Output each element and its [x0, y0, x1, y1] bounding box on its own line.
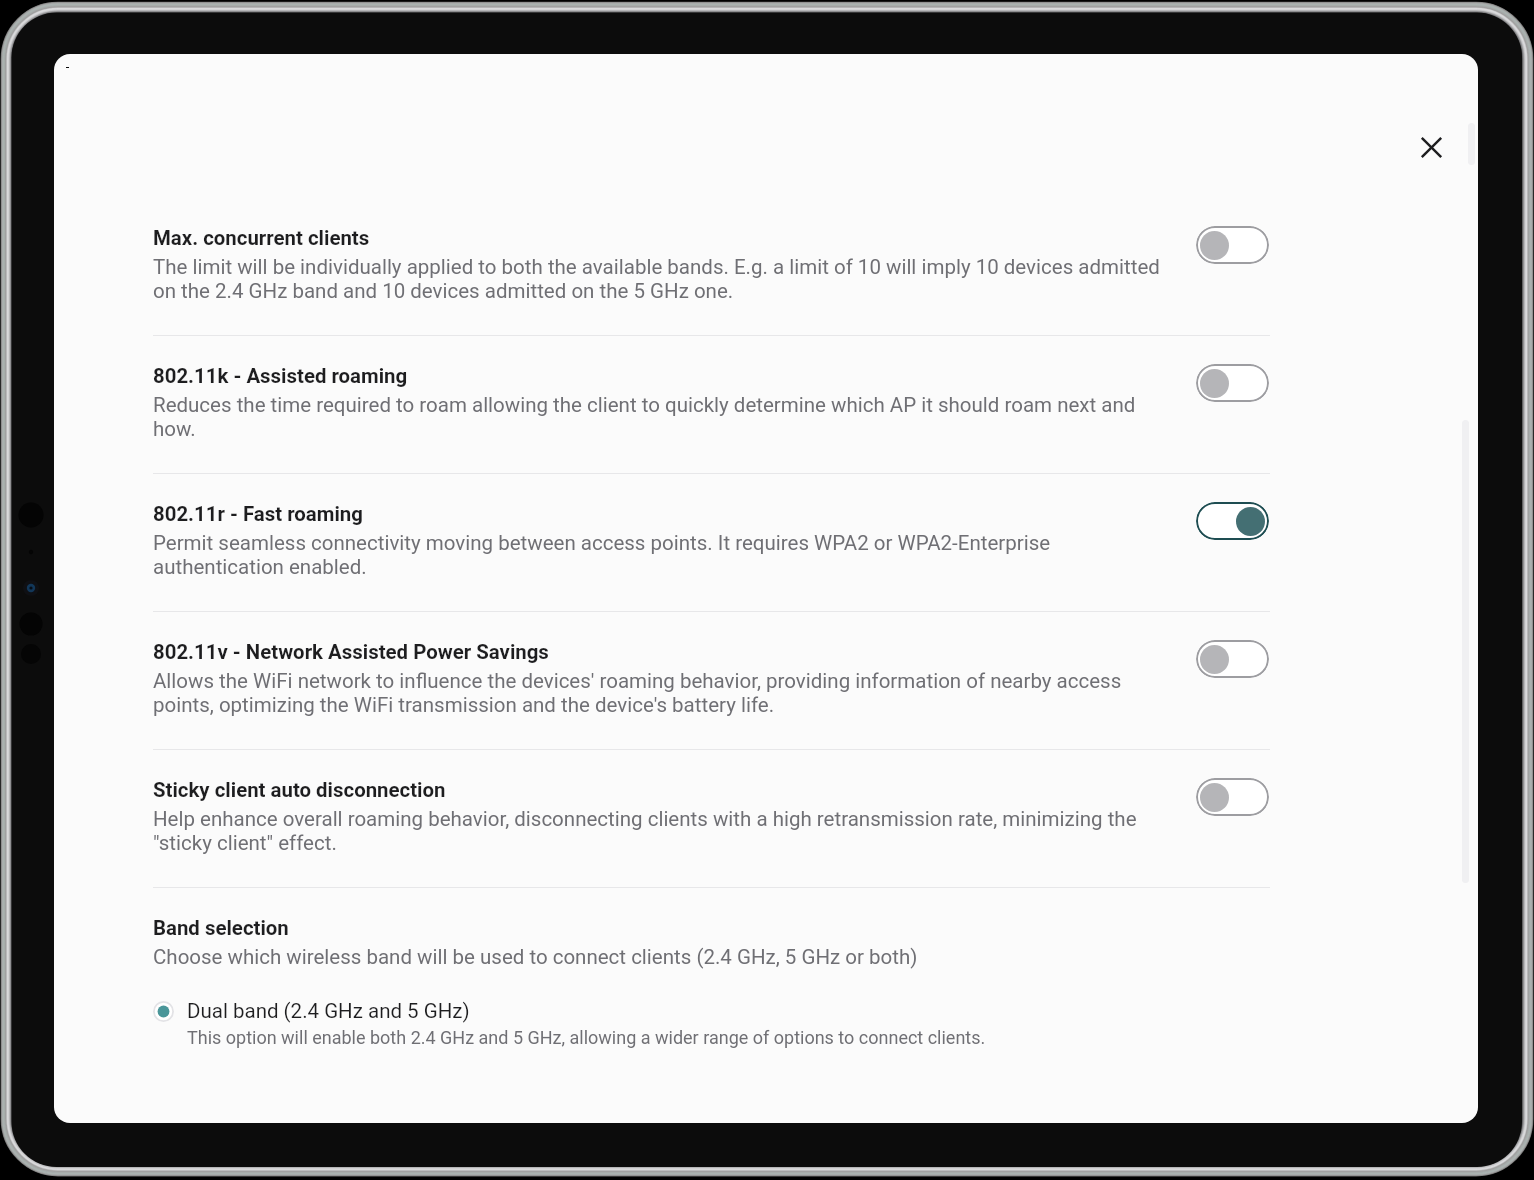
button[interactable]: 802.11k - Assisted roaming	[1196, 364, 1269, 402]
staticText: Allows the WiFi network to influence the…	[153, 669, 1173, 717]
button[interactable]: 802.11r - Fast roaming	[1196, 502, 1269, 540]
staticText: Help enhance overall roaming behavior, d…	[153, 807, 1173, 855]
staticText: Reduces the time required to roam allowi…	[153, 393, 1173, 441]
staticText: Sticky client auto disconnection	[153, 778, 446, 802]
button[interactable]: Dual band (2.4 GHz and 5 GHz)	[153, 999, 1270, 1049]
button[interactable]: Close	[1409, 125, 1453, 169]
button[interactable]: Max. concurrent clients	[1196, 226, 1269, 264]
button[interactable]: Sticky client auto disconnection	[1196, 778, 1269, 816]
staticText: 802.11v - Network Assisted Power Savings	[153, 640, 549, 664]
staticText: Max. concurrent clients	[153, 226, 370, 250]
button[interactable]: 802.11v - Network Assisted Power Savings	[1196, 640, 1269, 678]
staticText: Band selection	[153, 916, 289, 940]
staticText: Choose which wireless band will be used …	[153, 945, 918, 969]
staticText: 802.11k - Assisted roaming	[153, 364, 408, 388]
staticText: This option will enable both 2.4 GHz and…	[187, 1027, 986, 1049]
staticText: Permit seamless connectivity moving betw…	[153, 531, 1173, 579]
staticText: 802.11r - Fast roaming	[153, 502, 363, 526]
staticText: The limit will be individually applied t…	[153, 255, 1173, 303]
staticText: Dual band (2.4 GHz and 5 GHz)	[187, 999, 470, 1023]
